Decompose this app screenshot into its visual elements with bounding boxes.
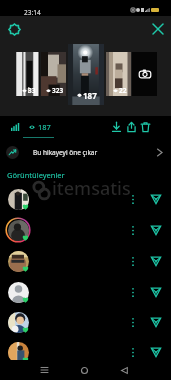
button[interactable]: More options xyxy=(125,314,141,330)
button[interactable]: 187 xyxy=(68,44,104,105)
staticText: Bu hikayeyi öne çıkar xyxy=(33,148,98,157)
button[interactable]: Send message xyxy=(146,312,166,332)
button[interactable]: Share xyxy=(121,117,141,137)
staticText: Görüntüleyenler xyxy=(7,170,65,180)
button[interactable]: More options xyxy=(125,284,141,300)
staticText: itemsatis xyxy=(52,176,131,201)
staticText: 22 xyxy=(119,86,127,95)
button[interactable]: Bu hikayeyi öne çıkar xyxy=(0,139,171,165)
staticText: 187 xyxy=(38,122,51,132)
button[interactable]: More options xyxy=(125,344,141,360)
button[interactable]: Recent apps xyxy=(34,360,54,380)
button[interactable]: Send message xyxy=(146,189,166,209)
button[interactable]: More options xyxy=(0,337,171,367)
button[interactable]: Delete xyxy=(135,117,155,137)
button[interactable]: Home xyxy=(74,360,94,380)
button[interactable]: Send message xyxy=(146,342,166,362)
button[interactable]: Download xyxy=(106,117,126,137)
button[interactable]: 22 xyxy=(106,52,131,96)
button[interactable]: Send message xyxy=(146,220,166,240)
button[interactable]: More options xyxy=(0,184,171,214)
button[interactable]: More options xyxy=(0,215,171,245)
button[interactable]: Insights xyxy=(5,117,25,137)
button[interactable]: More options xyxy=(0,246,171,276)
button[interactable]: Send message xyxy=(146,282,166,302)
button[interactable]: More options xyxy=(0,307,171,337)
button[interactable]: 323 xyxy=(41,52,66,96)
button[interactable]: Close xyxy=(147,18,169,40)
button[interactable]: Back xyxy=(114,360,134,380)
button[interactable]: More options xyxy=(125,253,141,269)
button[interactable]: More options xyxy=(125,222,141,238)
button[interactable]: More options xyxy=(0,277,171,307)
staticText: 323 xyxy=(52,86,64,95)
staticText: 23:14 xyxy=(24,8,41,17)
staticText: 187 xyxy=(83,90,97,101)
button[interactable]: 33 xyxy=(15,52,40,96)
button[interactable]: More options xyxy=(125,191,141,207)
button[interactable]: Camera xyxy=(132,52,157,96)
button[interactable]: Send message xyxy=(146,251,166,271)
button[interactable]: Settings xyxy=(3,18,25,40)
staticText: 33 xyxy=(28,86,36,95)
